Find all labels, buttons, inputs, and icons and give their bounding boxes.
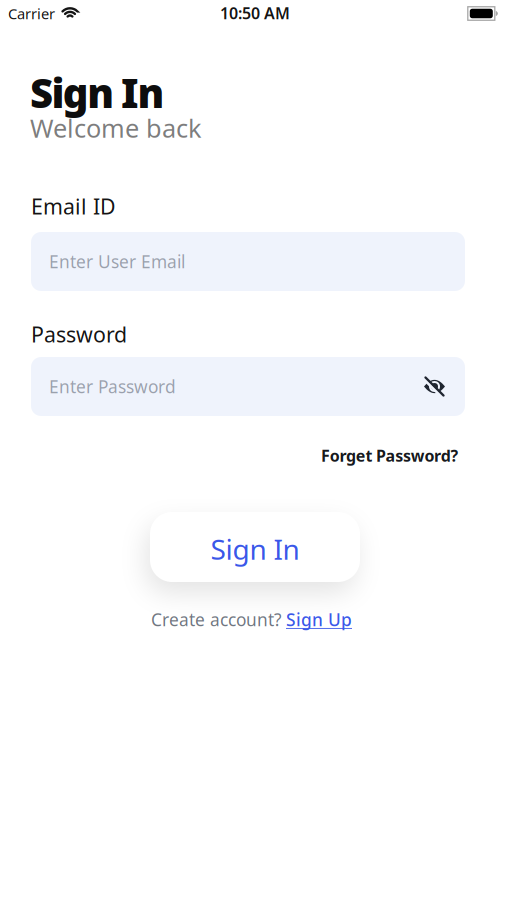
button[interactable]: Enter Password <box>31 357 465 416</box>
staticText: Welcome back <box>30 111 202 145</box>
staticText: Sign In <box>30 66 164 119</box>
button[interactable]: Enter User Email <box>31 232 465 291</box>
staticText: Email ID <box>31 192 116 220</box>
staticText: 10:50 AM <box>220 2 290 24</box>
button[interactable]: Create account? <box>151 608 352 631</box>
staticText: Enter User Email <box>49 250 185 273</box>
staticText: Forget Password? <box>321 445 458 466</box>
button[interactable]: Forget Password? <box>321 445 458 466</box>
staticText: Create account? <box>151 608 282 631</box>
staticText: Password <box>31 320 127 348</box>
staticText: Carrier <box>8 4 55 23</box>
staticText: Sign In <box>210 530 299 568</box>
button[interactable] <box>424 377 445 395</box>
staticText: Sign Up <box>286 608 352 631</box>
button[interactable]: Sign In <box>150 512 360 582</box>
staticText: Enter Password <box>49 375 176 398</box>
